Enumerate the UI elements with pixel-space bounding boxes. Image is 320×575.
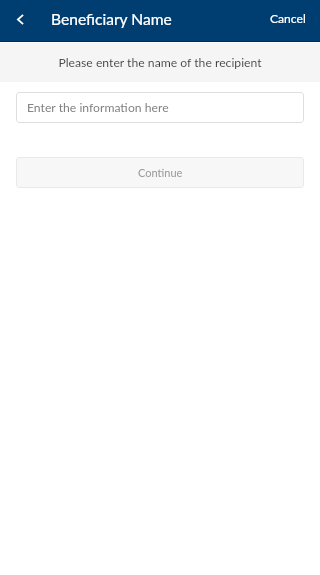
- button[interactable]: Continue: [16, 157, 304, 188]
- button[interactable]: Cancel: [256, 3, 320, 36]
- staticText: Beneficiary Name: [51, 10, 172, 29]
- staticText: Please enter the name of the recipient: [58, 55, 262, 70]
- staticText: Continue: [138, 166, 183, 179]
- staticText: Cancel: [270, 11, 306, 26]
- staticText: Enter the information here: [27, 100, 169, 115]
- button[interactable]: Back: [3, 2, 37, 36]
- button[interactable]: Enter the information here: [16, 92, 304, 123]
